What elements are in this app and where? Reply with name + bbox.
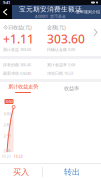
staticText: 费率规则介绍 xyxy=(76,9,100,14)
staticText: 收益率 xyxy=(64,85,79,92)
staticText: 9:41 xyxy=(3,0,10,5)
staticText: A00001 货币基金 xyxy=(35,13,66,19)
staticText: 最新净值 0.8240 xyxy=(3,71,31,76)
button[interactable]: 转出 xyxy=(43,164,101,180)
staticText: 2.81 xyxy=(3,122,10,127)
staticText: 金额(元) xyxy=(47,24,66,31)
staticText: 净值日期 10-23 xyxy=(47,71,73,76)
staticText: 303.60 xyxy=(47,31,85,47)
staticText: 累计收益率 5.68 xyxy=(47,62,75,67)
staticText: 09-23 xyxy=(2,155,11,158)
staticText: 宝元期安消费生额活 xyxy=(19,5,82,13)
button[interactable]: Fee rules xyxy=(75,5,101,19)
staticText: 10-23 xyxy=(14,155,23,158)
button[interactable]: 今日收益(元) xyxy=(0,19,101,56)
staticText: 持有份额 366.45 xyxy=(3,62,31,67)
staticText: 转出 xyxy=(64,167,80,177)
button[interactable]: 累计收益走势 xyxy=(4,82,42,95)
staticText: 2.59 xyxy=(3,133,10,138)
button[interactable]: 收益率 xyxy=(56,82,86,95)
staticText: 3.03 xyxy=(3,111,10,116)
staticText: 今日收益(元) xyxy=(3,24,32,31)
staticText: +1.11 xyxy=(3,31,34,47)
staticText: 累计收益 303.60 xyxy=(3,47,31,52)
staticText: 累计收益走势 xyxy=(8,83,38,90)
button[interactable]: Back xyxy=(0,5,12,19)
staticText: 待确认金额 0.00 xyxy=(47,47,75,52)
staticText: 3.60 xyxy=(5,99,12,104)
staticText: 买入 xyxy=(13,167,29,177)
staticText: 2.36 xyxy=(3,148,10,153)
button[interactable]: 买入 xyxy=(0,164,42,180)
